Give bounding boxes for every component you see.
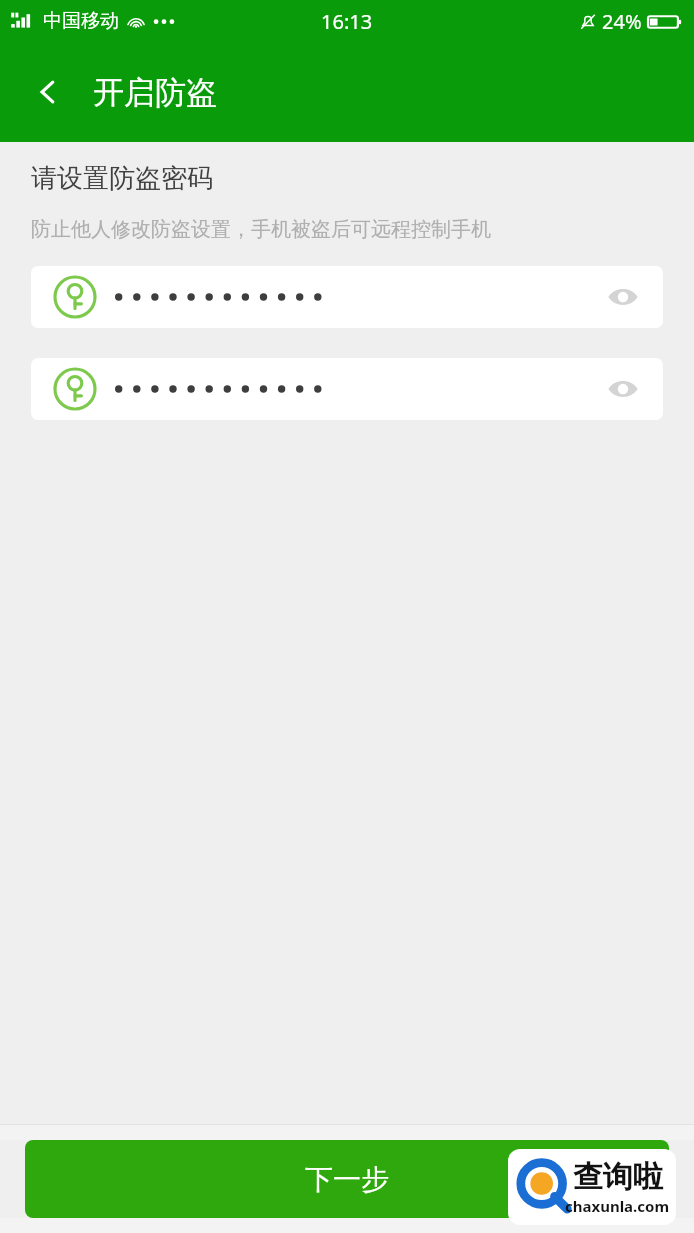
button[interactable]: Show password xyxy=(599,365,647,413)
staticText: 开启防盗 xyxy=(93,73,217,112)
button[interactable]: 下一步 xyxy=(25,1140,669,1218)
staticText: 请设置防盗密码 xyxy=(31,162,213,195)
button[interactable]: Back xyxy=(20,64,76,120)
button[interactable]: Show password xyxy=(31,266,663,328)
staticText: 查询啦 xyxy=(573,1158,663,1196)
staticText: 中国移动 xyxy=(43,9,119,33)
staticText: 下一步 xyxy=(305,1162,389,1197)
staticText: 24% xyxy=(602,8,642,35)
button[interactable]: Show password xyxy=(31,358,663,420)
staticText: 防止他人修改防盗设置，手机被盗后可远程控制手机 xyxy=(31,217,491,242)
staticText: chaxunla.com xyxy=(565,1196,670,1216)
button[interactable]: Show password xyxy=(599,273,647,321)
staticText: 16:13 xyxy=(321,8,373,35)
